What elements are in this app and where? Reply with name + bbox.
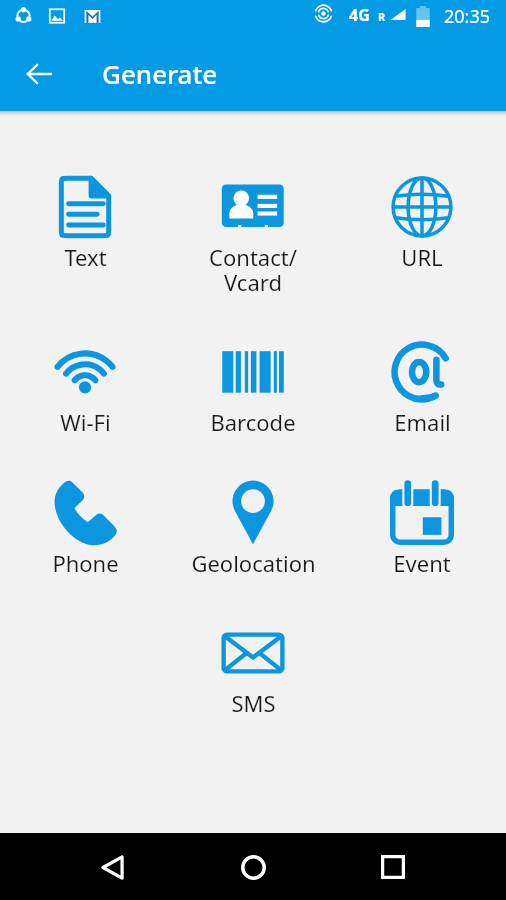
staticText: Email <box>394 407 451 437</box>
button[interactable]: Phone <box>5 481 165 578</box>
staticText: R <box>378 9 386 24</box>
staticText: Wi-Fi <box>60 407 111 437</box>
staticText: Barcode <box>210 407 296 437</box>
button[interactable]: SMS <box>173 621 333 718</box>
staticText: 4G <box>349 4 370 26</box>
button[interactable]: Email <box>342 340 502 437</box>
button[interactable]: Back <box>15 50 62 97</box>
staticText: Phone <box>52 548 119 578</box>
staticText: Geolocation <box>191 548 316 578</box>
button[interactable]: Back <box>88 843 136 891</box>
button[interactable]: Text <box>5 175 165 272</box>
button[interactable]: Wi-Fi <box>5 340 165 437</box>
staticText: Contact/ Vcard <box>209 242 297 297</box>
staticText: Generate <box>102 56 218 91</box>
staticText: SMS <box>231 688 276 718</box>
button[interactable]: Barcode <box>173 340 333 437</box>
button[interactable]: Recents <box>369 843 417 891</box>
button[interactable]: Geolocation <box>173 481 333 578</box>
button[interactable]: Contact/ Vcard <box>173 175 333 297</box>
button[interactable]: Home <box>229 843 277 891</box>
staticText: URL <box>401 242 443 272</box>
button[interactable]: Event <box>342 481 502 578</box>
staticText: Event <box>393 548 451 578</box>
staticText: 20:35 <box>444 4 491 29</box>
button[interactable]: URL <box>342 175 502 272</box>
staticText: Text <box>64 242 107 272</box>
